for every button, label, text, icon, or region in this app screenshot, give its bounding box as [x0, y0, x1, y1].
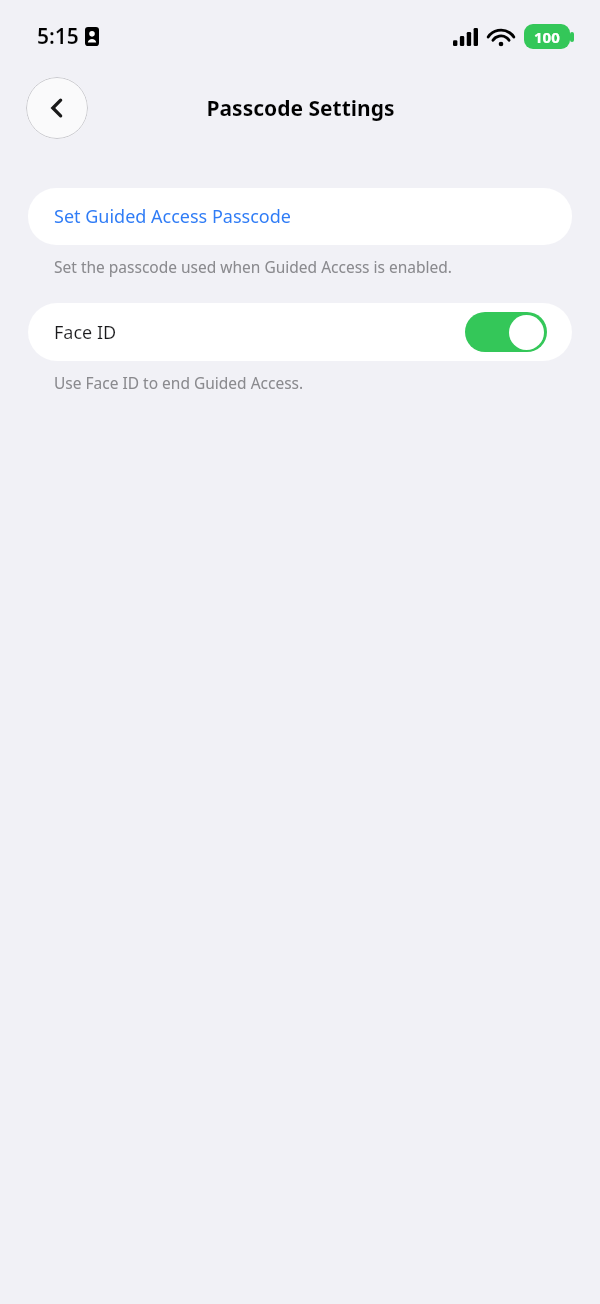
staticText: 5:15 — [37, 22, 79, 51]
staticText: Use Face ID to end Guided Access. — [54, 372, 304, 393]
staticText: 100 — [534, 27, 560, 47]
button[interactable]: Back — [26, 77, 88, 139]
staticText: Face ID — [54, 320, 117, 345]
staticText: Passcode Settings — [206, 94, 395, 123]
staticText: Set the passcode used when Guided Access… — [54, 256, 452, 277]
staticText: Set Guided Access Passcode — [54, 204, 291, 229]
button[interactable]: Face ID — [28, 303, 572, 361]
button[interactable]: Set Guided Access Passcode — [28, 188, 572, 245]
button[interactable]: Face ID — [465, 312, 547, 352]
